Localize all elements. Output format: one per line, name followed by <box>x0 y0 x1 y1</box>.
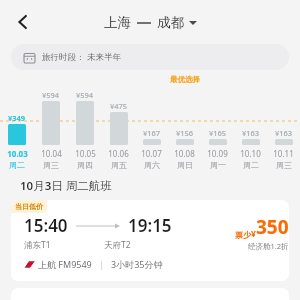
button[interactable]: 最优选择 <box>168 74 201 170</box>
button[interactable]: 旅行时段： <box>11 44 289 70</box>
staticText: 未来半年 <box>87 52 121 63</box>
staticText: | <box>99 258 104 270</box>
staticText: 成都 <box>157 14 184 31</box>
staticText: 350 <box>256 214 289 240</box>
staticText: 当日低价 <box>15 202 43 211</box>
staticText: 19:15 <box>128 214 172 237</box>
staticText: 10.11 <box>273 148 294 159</box>
button[interactable]: ¥475 <box>102 74 135 170</box>
staticText: 周四 <box>77 160 93 170</box>
staticText: ¥ <box>251 228 256 240</box>
staticText: 15:40 <box>24 214 68 237</box>
button[interactable]: 上海 <box>104 14 197 31</box>
staticText: 最优选择 <box>170 75 200 84</box>
staticText: 周五 <box>111 160 127 170</box>
staticText: 周二 <box>9 160 25 170</box>
staticText: ¥594 <box>76 90 94 100</box>
button[interactable]: ¥594 <box>68 74 102 170</box>
staticText: 周一 <box>210 160 226 170</box>
staticText: 10.09 <box>207 148 228 159</box>
staticText: 10.07 <box>141 148 162 159</box>
staticText: ¥163 <box>275 128 293 138</box>
button[interactable]: ¥165 <box>201 74 234 170</box>
staticText: 经济舱1.2折 <box>248 241 289 251</box>
button[interactable]: ¥594 <box>34 74 68 170</box>
staticText: 上海 <box>104 14 131 31</box>
staticText: 10.06 <box>108 148 129 159</box>
staticText: 周三 <box>43 160 59 170</box>
staticText: 浦东T1 <box>24 239 51 251</box>
staticText: 10.08 <box>174 148 195 159</box>
staticText: ¥165 <box>209 128 227 138</box>
button[interactable]: ¥349 <box>0 74 34 170</box>
button[interactable]: ¥167 <box>135 74 168 170</box>
staticText: 10月3日 周二航班 <box>20 178 112 194</box>
staticText: 旅行时段： <box>42 52 85 63</box>
button[interactable]: 当日低价 <box>11 200 289 281</box>
staticText: ¥163 <box>242 128 260 138</box>
staticText: 10.10 <box>240 148 261 159</box>
staticText: 10.05 <box>75 148 96 159</box>
staticText: ¥594 <box>42 90 60 100</box>
button[interactable]: ¥163 <box>267 74 300 170</box>
staticText: 10.03 <box>7 148 28 159</box>
staticText: 周二 <box>243 160 259 170</box>
staticText: ¥156 <box>176 128 194 138</box>
staticText: 3小时35分钟 <box>111 258 163 270</box>
staticText: 票少 <box>235 230 251 240</box>
staticText: 周三 <box>276 160 292 170</box>
button[interactable]: ¥163 <box>234 74 267 170</box>
staticText: 天府T2 <box>104 239 131 251</box>
staticText: ¥475 <box>110 101 128 111</box>
staticText: ¥167 <box>143 128 161 138</box>
staticText: 周六 <box>144 160 160 170</box>
staticText: ¥349 <box>8 113 26 123</box>
staticText: 上航 FM9549 <box>38 258 92 270</box>
staticText: 周日 <box>177 160 193 170</box>
button[interactable]: Back <box>6 5 40 39</box>
staticText: 10.04 <box>41 148 62 159</box>
